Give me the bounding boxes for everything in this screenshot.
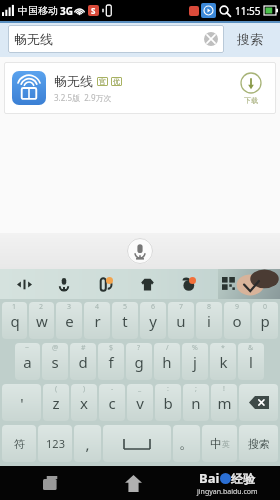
- staticText: t: [122, 311, 128, 331]
- button[interactable]: p: [252, 302, 278, 339]
- staticText: ): [83, 384, 86, 394]
- staticText: :: [167, 384, 169, 394]
- button[interactable]: e: [56, 302, 82, 339]
- staticText: 0: [263, 302, 268, 312]
- staticText: 123: [46, 436, 65, 451]
- staticText: 符: [14, 437, 25, 451]
- staticText: 下载: [244, 96, 258, 105]
- staticText: o: [232, 311, 242, 331]
- button[interactable]: Switch language: [202, 425, 237, 462]
- staticText: s: [51, 352, 59, 372]
- button[interactable]: m: [211, 384, 237, 421]
- button[interactable]: ,: [74, 425, 101, 462]
- button[interactable]: j: [182, 343, 208, 380]
- staticText: 中: [210, 436, 222, 451]
- button[interactable]: c: [99, 384, 125, 421]
- button[interactable]: n: [183, 384, 209, 421]
- staticText: 3: [67, 302, 72, 312]
- button[interactable]: Theme preview: [218, 269, 280, 299]
- button[interactable]: 符: [2, 425, 36, 462]
- staticText: 。: [179, 434, 194, 453]
- button[interactable]: z: [43, 384, 69, 421]
- button[interactable]: 搜索: [224, 25, 276, 53]
- button[interactable]: 搜索: [239, 425, 278, 462]
- button[interactable]: Scan QR code: [219, 274, 239, 294]
- staticText: p: [260, 311, 270, 331]
- button[interactable]: Theme: [137, 274, 157, 294]
- button[interactable]: o: [224, 302, 250, 339]
- staticText: y: [149, 311, 157, 331]
- button[interactable]: 。: [173, 425, 200, 462]
- button[interactable]: Recents: [35, 467, 67, 499]
- staticText: !: [223, 384, 225, 394]
- staticText: @: [52, 343, 59, 353]
- button[interactable]: Move cursor: [14, 274, 34, 294]
- button[interactable]: d: [70, 343, 96, 380]
- staticText: ,: [85, 434, 90, 454]
- staticText: %: [192, 343, 198, 353]
- staticText: *: [221, 343, 225, 353]
- staticText: 7: [179, 302, 184, 312]
- button[interactable]: Download: [234, 72, 268, 105]
- button[interactable]: 畅无线: [4, 62, 276, 114]
- button[interactable]: Emoji: [178, 274, 198, 294]
- button[interactable]: Voice input: [127, 238, 153, 264]
- button[interactable]: v: [127, 384, 153, 421]
- staticText: i: [207, 311, 211, 331]
- button[interactable]: t: [112, 302, 138, 339]
- button[interactable]: Backspace: [239, 384, 278, 421]
- button[interactable]: Voice: [54, 274, 74, 294]
- staticText: x: [80, 393, 88, 413]
- staticText: w: [36, 311, 48, 331]
- staticText: ': [20, 393, 24, 413]
- staticText: l: [249, 352, 253, 372]
- staticText: 4: [95, 302, 100, 312]
- staticText: q: [10, 311, 20, 331]
- button[interactable]: ': [2, 384, 41, 421]
- button[interactable]: a: [15, 343, 40, 380]
- staticText: f: [108, 352, 114, 372]
- staticText: jingyan.baidu.com: [197, 487, 258, 497]
- staticText: 3G: [60, 4, 73, 18]
- button[interactable]: Attach: [95, 274, 115, 294]
- staticText: -: [111, 384, 114, 394]
- staticText: a: [23, 352, 32, 372]
- button[interactable]: Home: [117, 467, 149, 499]
- staticText: 官: [99, 77, 106, 86]
- staticText: 11:55: [235, 4, 261, 18]
- staticText: v: [136, 393, 144, 413]
- staticText: 搜索: [248, 437, 270, 451]
- staticText: 经验: [231, 471, 255, 486]
- button[interactable]: r: [84, 302, 110, 339]
- button[interactable]: Clear: [204, 32, 218, 46]
- button[interactable]: f: [98, 343, 124, 380]
- button[interactable]: g: [126, 343, 152, 380]
- button[interactable]: q: [2, 302, 27, 339]
- button[interactable]: 123: [38, 425, 72, 462]
- staticText: c: [108, 393, 116, 413]
- button[interactable]: k: [210, 343, 236, 380]
- staticText: e: [65, 311, 74, 331]
- button[interactable]: w: [29, 302, 54, 339]
- button[interactable]: b: [155, 384, 181, 421]
- button[interactable]: i: [196, 302, 222, 339]
- button[interactable]: u: [168, 302, 194, 339]
- button[interactable]: y: [140, 302, 166, 339]
- staticText: b: [163, 393, 173, 413]
- staticText: 5: [123, 302, 128, 312]
- staticText: 3.2.5版 2.9万次: [54, 92, 112, 103]
- button[interactable]: s: [42, 343, 68, 380]
- staticText: 搜索: [237, 31, 263, 47]
- staticText: _: [138, 384, 142, 394]
- staticText: h: [162, 352, 172, 372]
- staticText: 优: [113, 77, 120, 86]
- staticText: 2: [39, 302, 44, 312]
- button[interactable]: h: [154, 343, 180, 380]
- staticText: 6: [151, 302, 156, 312]
- button[interactable]: l: [238, 343, 264, 380]
- button[interactable]: 畅无线: [8, 25, 224, 53]
- button[interactable]: Space: [103, 425, 171, 462]
- staticText: /: [166, 343, 169, 353]
- staticText: 畅无线: [14, 31, 53, 47]
- button[interactable]: x: [71, 384, 97, 421]
